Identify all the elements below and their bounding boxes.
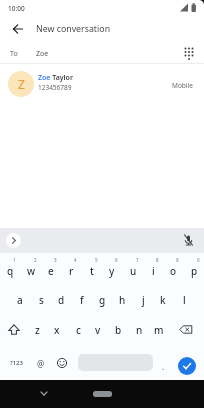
staticText: 8	[156, 257, 159, 263]
button[interactable]	[176, 321, 196, 339]
staticText: .	[162, 361, 165, 372]
staticText: t	[90, 264, 94, 278]
button[interactable]: d	[51, 289, 71, 310]
staticText: h	[119, 293, 126, 307]
staticText: l	[183, 293, 186, 307]
staticText: w	[27, 264, 36, 278]
button[interactable]	[0, 66, 204, 100]
staticText: c	[76, 323, 81, 337]
staticText: 2	[34, 257, 37, 263]
button[interactable]: b	[108, 319, 128, 340]
staticText: 6	[115, 257, 118, 263]
staticText: Zoe	[36, 49, 49, 59]
button[interactable]: n	[129, 319, 149, 340]
button[interactable]: e	[41, 260, 61, 281]
button[interactable]	[0, 42, 204, 63]
staticText: j	[142, 293, 145, 307]
staticText: i	[152, 264, 155, 278]
button[interactable]	[4, 321, 24, 339]
staticText: Mobile	[172, 81, 193, 90]
staticText: ?123	[10, 359, 23, 367]
staticText: m	[154, 323, 164, 337]
button[interactable]: s	[31, 289, 51, 310]
staticText: e	[48, 264, 54, 278]
button[interactable]	[4, 352, 28, 374]
button[interactable]: i	[143, 260, 163, 281]
staticText: Z	[18, 76, 25, 92]
button[interactable]: v	[88, 319, 108, 340]
staticText: g	[99, 293, 106, 307]
button[interactable]: m	[149, 319, 169, 340]
staticText: 7	[136, 257, 139, 263]
button[interactable]: k	[153, 289, 173, 310]
button[interactable]: x	[47, 319, 67, 340]
staticText: u	[130, 264, 137, 278]
staticText: 9	[176, 257, 179, 263]
button[interactable]: p	[184, 260, 204, 281]
button[interactable]	[180, 232, 197, 249]
button[interactable]: g	[92, 289, 112, 310]
staticText: n	[136, 323, 143, 337]
button[interactable]	[53, 354, 71, 372]
staticText: b	[115, 323, 122, 337]
staticText: s	[39, 293, 44, 307]
staticText: x	[54, 323, 60, 337]
button[interactable]: c	[68, 319, 88, 340]
staticText: a	[17, 293, 23, 307]
staticText: y	[109, 264, 115, 278]
button[interactable]	[8, 19, 28, 39]
staticText: r	[69, 264, 74, 278]
staticText: f	[80, 293, 84, 307]
button[interactable]: o	[163, 260, 183, 281]
button[interactable]: w	[21, 260, 41, 281]
staticText: p	[191, 264, 198, 278]
button[interactable]	[180, 44, 198, 62]
staticText: 3	[54, 257, 57, 263]
button[interactable]	[6, 233, 21, 248]
button[interactable]: z	[27, 319, 47, 340]
button[interactable]: u	[123, 260, 143, 281]
button[interactable]	[93, 391, 112, 397]
staticText: 123456789	[38, 83, 72, 92]
staticText: v	[95, 323, 101, 337]
button[interactable]: @	[31, 353, 51, 374]
staticText: 5	[95, 257, 98, 263]
staticText: d	[58, 293, 65, 307]
button[interactable]: y	[102, 260, 122, 281]
button[interactable]: r	[61, 260, 81, 281]
staticText: 4	[74, 257, 77, 263]
staticText: k	[160, 293, 166, 307]
staticText: New conversation	[36, 23, 111, 35]
staticText: 0	[197, 257, 200, 263]
button[interactable]: h	[112, 289, 132, 310]
button[interactable]: j	[133, 289, 153, 310]
button[interactable]: l	[174, 289, 194, 310]
staticText: 10:00	[8, 4, 25, 13]
staticText: Zoe Taylor	[38, 73, 73, 83]
staticText: To	[10, 49, 18, 59]
button[interactable]	[36, 385, 52, 401]
button[interactable]: f	[72, 289, 92, 310]
staticText: z	[35, 323, 40, 337]
button[interactable]: q	[0, 260, 20, 281]
staticText: @	[37, 358, 45, 369]
button[interactable]	[178, 357, 196, 375]
staticText: q	[7, 264, 14, 278]
button[interactable]: a	[10, 289, 30, 310]
staticText: o	[170, 264, 177, 278]
button[interactable]: t	[82, 260, 102, 281]
staticText: 1	[13, 257, 16, 263]
